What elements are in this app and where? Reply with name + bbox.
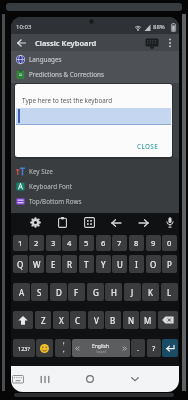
staticText: , [63, 346, 65, 354]
button[interactable] [86, 375, 94, 383]
button[interactable] [166, 217, 174, 229]
button[interactable]: English [72, 339, 130, 357]
button[interactable]: J [124, 283, 141, 301]
button[interactable]: C [70, 311, 86, 329]
button[interactable]: G [87, 283, 104, 301]
staticText: B [110, 315, 116, 326]
button[interactable]: U [112, 255, 127, 273]
button[interactable]: X [53, 311, 69, 329]
button[interactable]: 123? [13, 339, 35, 357]
staticText: S [37, 287, 42, 298]
button[interactable]: H [105, 283, 122, 301]
button[interactable] [30, 217, 41, 228]
button[interactable]: ? [147, 339, 161, 357]
staticText: 4 [67, 238, 72, 248]
staticText: D [56, 287, 62, 298]
button[interactable]: E [46, 255, 61, 273]
button[interactable]: Y [96, 255, 111, 273]
button[interactable]: 7 [112, 235, 127, 251]
button[interactable]: D [50, 283, 67, 301]
staticText: Key Size [29, 167, 53, 176]
button[interactable]: 5 [79, 235, 94, 251]
staticText: Top/Bottom Rows [29, 197, 82, 206]
button[interactable]: Key Size [11, 164, 179, 179]
staticText: I [135, 259, 138, 270]
staticText: M [144, 315, 152, 326]
staticText: 1 [18, 238, 23, 248]
button[interactable]: O [146, 255, 161, 273]
button[interactable]: I [129, 255, 144, 273]
button[interactable]: CLOSE [137, 142, 159, 151]
staticText: 9 [151, 238, 156, 248]
staticText: Keyboard Font [29, 182, 72, 191]
staticText: F [74, 287, 79, 298]
staticText: P [167, 259, 172, 270]
staticText: X [59, 315, 64, 326]
button[interactable] [40, 376, 50, 383]
button[interactable] [138, 219, 149, 227]
button[interactable]: F [68, 283, 85, 301]
button[interactable]: L [161, 283, 178, 301]
button[interactable] [111, 219, 122, 227]
button[interactable] [145, 38, 159, 49]
staticText: T [84, 259, 89, 270]
button[interactable] [158, 311, 178, 329]
button[interactable]: M [140, 311, 156, 329]
button[interactable]: R [62, 255, 77, 273]
button[interactable]: S [31, 283, 48, 301]
staticText: 3 [51, 238, 56, 248]
button[interactable]: , [55, 339, 71, 357]
button[interactable] [168, 38, 172, 48]
button[interactable]: 8 [129, 235, 144, 251]
button[interactable]: Predictions & Corrections [11, 67, 179, 82]
button[interactable] [131, 377, 139, 382]
staticText: 6 [101, 238, 106, 248]
staticText: English [92, 343, 110, 350]
staticText: Swiped [96, 350, 107, 354]
button[interactable] [58, 217, 67, 228]
staticText: O [150, 259, 157, 270]
button[interactable]: 1 [13, 235, 28, 251]
staticText: Q [17, 259, 24, 270]
button[interactable]: Z [35, 311, 51, 329]
button[interactable] [36, 339, 53, 357]
staticText: J [131, 287, 134, 298]
staticText: 7 [117, 238, 122, 248]
button[interactable] [17, 39, 26, 47]
staticText: Languages [29, 55, 62, 64]
staticText: Z [41, 315, 46, 326]
staticText: 5 [84, 238, 89, 248]
staticText: L [167, 287, 172, 298]
button[interactable]: 6 [96, 235, 111, 251]
button[interactable] [162, 339, 178, 357]
button[interactable]: . [131, 339, 145, 357]
button[interactable]: Q [13, 255, 28, 273]
staticText: Predictions & Corrections [29, 70, 104, 79]
button[interactable]: 9 [146, 235, 161, 251]
button[interactable]: N [123, 311, 139, 329]
button[interactable]: 0 [162, 235, 177, 251]
button[interactable]: T [79, 255, 94, 273]
staticText: E [51, 259, 56, 270]
button[interactable]: 4 [62, 235, 77, 251]
button[interactable]: Keyboard Font [11, 179, 179, 194]
button[interactable]: P [162, 255, 177, 273]
button[interactable]: V [88, 311, 104, 329]
staticText: . [137, 343, 140, 353]
button[interactable]: Top/Bottom Rows [11, 194, 179, 209]
button[interactable]: Languages [11, 52, 179, 67]
staticText: N [128, 315, 135, 326]
staticText: CLOSE [137, 142, 159, 151]
staticText: K [148, 287, 153, 298]
button[interactable]: A [13, 283, 30, 301]
button[interactable]: K [142, 283, 159, 301]
button[interactable] [84, 217, 95, 228]
button[interactable]: W [29, 255, 44, 273]
button[interactable] [12, 375, 24, 384]
button[interactable]: 2 [29, 235, 44, 251]
button[interactable]: 3 [46, 235, 61, 251]
button[interactable] [13, 311, 33, 329]
button[interactable]: B [105, 311, 121, 329]
staticText: H [111, 287, 117, 298]
staticText: C [75, 315, 81, 326]
